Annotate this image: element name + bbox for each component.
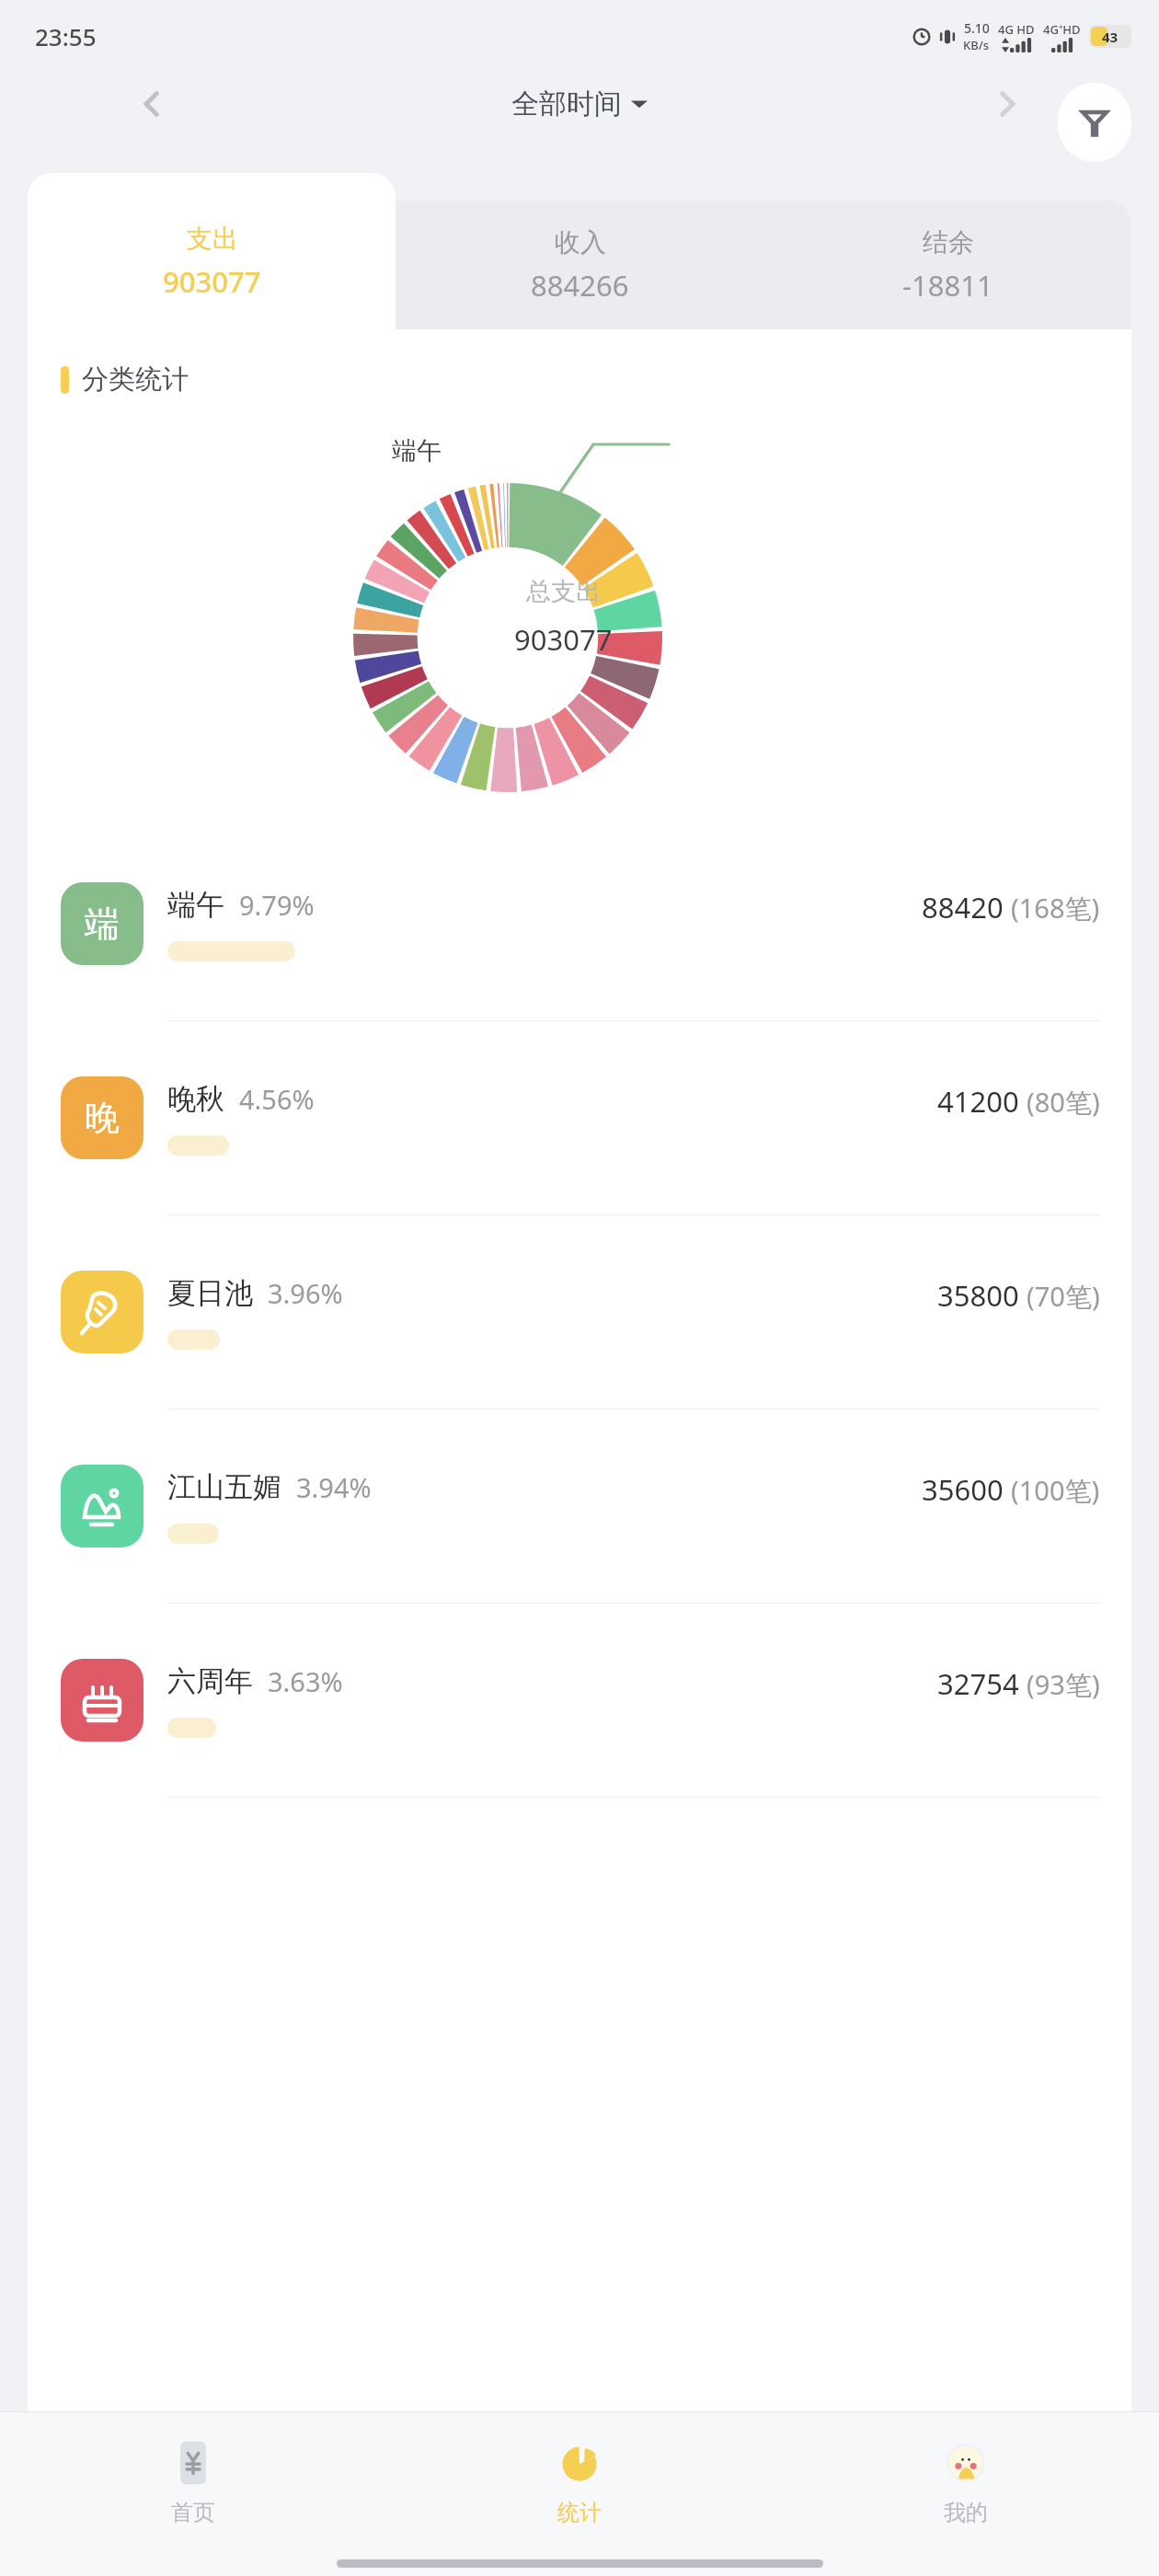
staticText: 晚秋 xyxy=(167,1081,224,1117)
staticText: 结余 xyxy=(923,226,974,259)
button[interactable]: 我的 xyxy=(773,2412,1159,2550)
button[interactable]: Previous period xyxy=(120,72,184,136)
staticText: (168笔) xyxy=(1011,890,1100,926)
staticText: 全部时间 xyxy=(511,86,622,121)
staticText: 903077 xyxy=(514,620,613,659)
staticText: 5.10 xyxy=(964,19,990,37)
staticText: 4G HD xyxy=(998,21,1035,38)
staticText: 端午 xyxy=(167,887,224,923)
staticText: 收入 xyxy=(555,226,606,259)
staticText: 884266 xyxy=(531,266,629,305)
staticText: 夏日池 xyxy=(167,1275,253,1311)
staticText: (80笔) xyxy=(1027,1084,1100,1121)
staticText: 分类统计 xyxy=(82,362,189,397)
staticText: 3.63% xyxy=(268,1663,343,1699)
button[interactable]: 江山五媚 xyxy=(28,1409,1131,1604)
staticText: 我的 xyxy=(944,2499,988,2526)
staticText: 4.56% xyxy=(239,1081,315,1117)
staticText: (100笔) xyxy=(1011,1472,1100,1509)
button[interactable]: 支出 xyxy=(28,173,396,329)
staticText: 43 xyxy=(1102,28,1119,46)
staticText: KB/s xyxy=(963,37,990,53)
staticText: 支出 xyxy=(187,223,238,255)
staticText: 23:55 xyxy=(35,20,97,52)
staticText: 端午 xyxy=(392,435,442,466)
staticText: 3.96% xyxy=(268,1275,343,1311)
staticText: 统计 xyxy=(557,2499,602,2526)
staticText: 9.79% xyxy=(239,887,315,923)
staticText: 35800 xyxy=(937,1276,1019,1315)
staticText: (93笔) xyxy=(1027,1666,1100,1703)
button[interactable]: 六周年 xyxy=(28,1604,1131,1798)
staticText: 江山五媚 xyxy=(167,1469,281,1505)
staticText: 3.94% xyxy=(296,1469,372,1505)
staticText: 端 xyxy=(85,902,120,946)
staticText: 35600 xyxy=(922,1470,1004,1509)
staticText: 首页 xyxy=(171,2499,215,2526)
staticText: 六周年 xyxy=(167,1663,253,1699)
button[interactable]: 统计 xyxy=(386,2412,773,2550)
button[interactable]: 收入 xyxy=(396,201,763,329)
button[interactable]: 全部时间 xyxy=(502,81,657,127)
button[interactable]: 晚 xyxy=(28,1021,1131,1215)
staticText: 4G⁺HD xyxy=(1043,21,1081,38)
staticText: 总支出 xyxy=(526,576,601,607)
button[interactable]: 结余 xyxy=(763,201,1131,329)
button[interactable]: 端 xyxy=(28,827,1131,1021)
staticText: (70笔) xyxy=(1027,1278,1100,1315)
staticText: 32754 xyxy=(937,1664,1019,1703)
staticText: 903077 xyxy=(163,262,261,301)
button[interactable]: Filter xyxy=(1058,83,1131,162)
staticText: 晚 xyxy=(85,1096,120,1140)
button[interactable]: Next period xyxy=(975,72,1039,136)
staticText: -18811 xyxy=(902,266,993,305)
staticText: 41200 xyxy=(937,1082,1019,1121)
staticText: 88420 xyxy=(922,888,1004,926)
button[interactable]: 夏日池 xyxy=(28,1215,1131,1409)
button[interactable]: 首页 xyxy=(0,2412,386,2550)
